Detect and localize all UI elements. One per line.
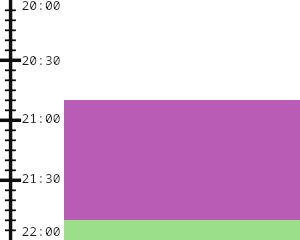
other: Time ruler 20:00 to 22:00 — [0, 0, 300, 240]
